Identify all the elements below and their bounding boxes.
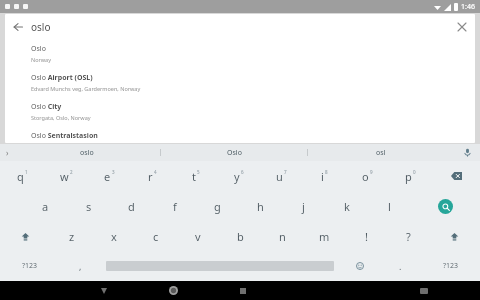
button[interactable]: More: [0, 144, 14, 161]
button[interactable]: m: [303, 221, 345, 251]
staticText: q: [17, 169, 24, 184]
staticText: z: [69, 229, 75, 244]
button[interactable]: r: [131, 161, 174, 191]
staticText: k: [344, 199, 350, 214]
staticText: u: [276, 169, 283, 184]
button[interactable]: u: [260, 161, 303, 191]
staticText: Oslo City: [31, 102, 62, 112]
button[interactable]: Space: [101, 251, 339, 281]
staticText: h: [257, 199, 264, 214]
button[interactable]: Home: [138, 281, 208, 300]
button[interactable]: t: [174, 161, 217, 191]
button[interactable]: ?: [387, 221, 429, 251]
button[interactable]: Recents: [208, 281, 278, 300]
staticText: 5: [197, 169, 200, 175]
staticText: oslo: [31, 20, 449, 34]
staticText: 1: [25, 169, 28, 175]
button[interactable]: oslo: [14, 144, 160, 161]
staticText: ?: [406, 229, 411, 244]
staticText: v: [195, 229, 201, 244]
staticText: .: [399, 260, 402, 272]
staticText: y: [234, 169, 240, 184]
button[interactable]: d: [110, 191, 153, 221]
button[interactable]: s: [67, 191, 110, 221]
staticText: Oslo: [31, 44, 46, 54]
staticText: ?123: [443, 261, 459, 271]
staticText: Oslo: [227, 148, 242, 158]
staticText: Oslo Airport (OSL): [31, 73, 93, 83]
button[interactable]: l: [368, 191, 411, 221]
button[interactable]: Backspace: [432, 161, 480, 191]
button[interactable]: Clear: [449, 14, 475, 40]
button[interactable]: i: [303, 161, 346, 191]
staticText: Storgata, Oslo, Norway: [31, 114, 91, 121]
button[interactable]: Oslo: [161, 144, 307, 161]
staticText: c: [153, 229, 159, 244]
button[interactable]: Shift: [429, 221, 480, 251]
staticText: ›: [6, 147, 9, 158]
button[interactable]: Oslo City: [5, 97, 475, 126]
staticText: s: [86, 199, 92, 214]
button[interactable]: x: [93, 221, 135, 251]
staticText: 4: [154, 169, 157, 175]
button[interactable]: p: [389, 161, 432, 191]
button[interactable]: !: [345, 221, 387, 251]
staticText: e: [104, 169, 111, 184]
staticText: a: [42, 199, 49, 214]
button[interactable]: Emoji: [339, 251, 380, 281]
button[interactable]: ,: [60, 251, 101, 281]
staticText: t: [192, 169, 196, 184]
button[interactable]: ?123: [0, 251, 60, 281]
button[interactable]: g: [196, 191, 239, 221]
button[interactable]: y: [217, 161, 260, 191]
button[interactable]: osl: [308, 144, 454, 161]
staticText: 0: [413, 169, 416, 175]
button[interactable]: ?123: [421, 251, 480, 281]
staticText: m: [319, 229, 330, 244]
button[interactable]: h: [239, 191, 282, 221]
button[interactable]: k: [325, 191, 368, 221]
staticText: Edvard Munchs veg, Gardermoen, Norway: [31, 85, 141, 92]
staticText: 8: [325, 169, 328, 175]
staticText: b: [237, 229, 244, 244]
button[interactable]: Keyboard: [389, 281, 459, 300]
button[interactable]: o: [346, 161, 389, 191]
staticText: w: [60, 169, 69, 184]
staticText: g: [214, 199, 221, 214]
staticText: l: [388, 199, 391, 214]
button[interactable]: c: [135, 221, 177, 251]
button[interactable]: z: [51, 221, 93, 251]
button[interactable]: Back: [69, 281, 138, 300]
staticText: 7: [284, 169, 287, 175]
staticText: osl: [376, 148, 386, 158]
button[interactable]: v: [177, 221, 219, 251]
staticText: 2: [70, 169, 73, 175]
button[interactable]: Voice input: [454, 144, 480, 161]
staticText: Oslo Sentralstasjon: [31, 131, 98, 138]
staticText: 6: [241, 169, 244, 175]
staticText: 9: [370, 169, 373, 175]
staticText: p: [405, 169, 412, 184]
button[interactable]: Back: [5, 14, 31, 40]
button[interactable]: b: [219, 221, 261, 251]
button[interactable]: n: [261, 221, 303, 251]
button[interactable]: Shift: [0, 221, 51, 251]
button[interactable]: e: [88, 161, 131, 191]
staticText: oslo: [80, 148, 94, 158]
button[interactable]: q: [0, 161, 44, 191]
button[interactable]: f: [153, 191, 196, 221]
button[interactable]: a: [23, 191, 67, 221]
button[interactable]: Oslo: [5, 40, 475, 68]
staticText: Norway: [31, 56, 51, 63]
staticText: ?123: [22, 261, 38, 271]
staticText: x: [111, 229, 117, 244]
staticText: f: [173, 199, 177, 214]
button[interactable]: j: [282, 191, 325, 221]
button[interactable]: Search: [411, 191, 480, 221]
staticText: j: [302, 199, 305, 214]
staticText: !: [365, 229, 368, 244]
button[interactable]: w: [44, 161, 88, 191]
button[interactable]: Oslo Airport (OSL): [5, 68, 475, 97]
button[interactable]: Oslo Sentralstasjon: [5, 126, 475, 143]
